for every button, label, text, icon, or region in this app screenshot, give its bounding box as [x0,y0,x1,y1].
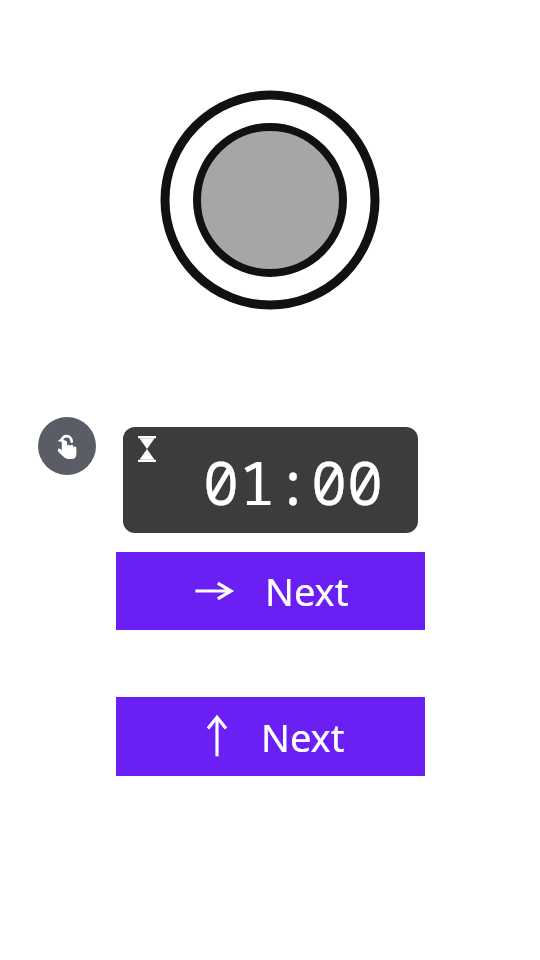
button[interactable]: Tap gesture [38,417,96,475]
staticText: Next [261,711,345,763]
button[interactable]: Next [116,697,425,776]
staticText: 01:00 [203,441,383,523]
button[interactable]: Next [116,552,425,630]
staticText: Next [265,565,349,617]
button[interactable]: 01:00 [123,427,418,533]
